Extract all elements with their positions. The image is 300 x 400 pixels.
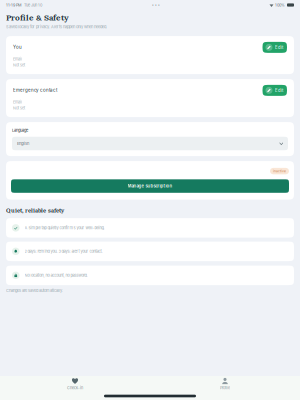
staticText: Tue Jun 10 (24, 3, 42, 7)
staticText: Profile & Safety (6, 12, 69, 23)
staticText: Edit (275, 45, 283, 50)
staticText: Not set (13, 63, 25, 67)
staticText: Email (13, 100, 22, 104)
staticText: inactive (273, 169, 286, 173)
staticText: Language (12, 128, 28, 133)
staticText: Edit (275, 88, 283, 93)
staticText: Emergency contact (13, 87, 57, 93)
staticText: A simple tap quietly confirms your well-… (24, 225, 104, 230)
staticText: Email (13, 57, 22, 61)
staticText: • • • (152, 3, 160, 7)
staticText: You (13, 44, 22, 50)
staticText: Manage subscription (127, 183, 172, 189)
staticText: Check-in (67, 386, 83, 390)
staticText: Profile (220, 386, 230, 390)
staticText: 11:19 PM (6, 3, 21, 7)
staticText: Not set (13, 106, 25, 110)
staticText: 100% (275, 3, 285, 7)
button[interactable]: Edit (262, 85, 287, 96)
button[interactable]: Manage subscription (11, 179, 289, 193)
button[interactable]: Check-in (0, 375, 150, 393)
staticText: English (17, 141, 29, 146)
staticText: No location, no account, no password. (24, 273, 87, 278)
button[interactable]: Profile (150, 375, 300, 393)
staticText: Quiet, reliable safety (6, 207, 64, 214)
staticText: Changes are saved automatically. (6, 288, 63, 293)
staticText: 2 days: remind you. 3 days: alert your c… (24, 249, 102, 254)
button[interactable]: Edit (262, 42, 287, 53)
staticText: Saved locally for privacy. Alerts happen… (6, 24, 107, 29)
